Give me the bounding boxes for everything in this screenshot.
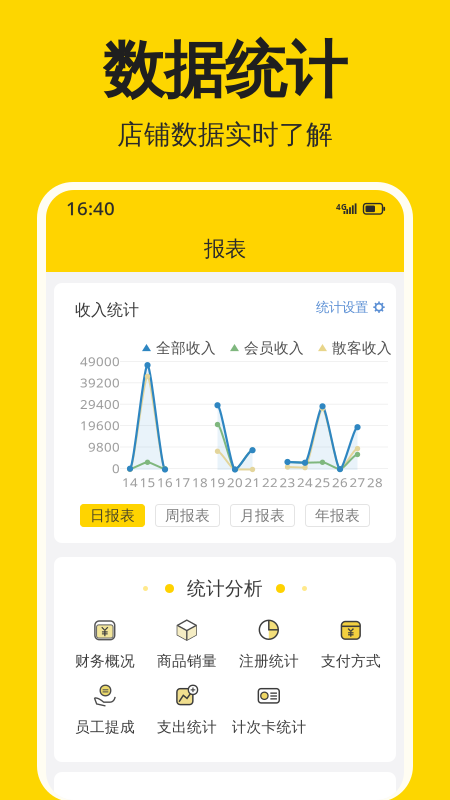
staticText: 数据统计 <box>103 33 347 108</box>
staticText: 9800 <box>88 438 120 455</box>
staticText: 日报表 <box>90 506 135 524</box>
staticText: 年报表 <box>315 506 360 524</box>
staticText: 28 <box>367 473 383 491</box>
staticText: 支付方式 <box>321 652 381 670</box>
button[interactable]: 计次卡统计 <box>228 680 310 738</box>
button[interactable]: 月报表 <box>230 504 294 526</box>
button[interactable]: 支付方式 <box>310 614 392 672</box>
staticText: 15 <box>139 473 155 491</box>
staticText: 21 <box>244 473 260 491</box>
button[interactable]: 年报表 <box>305 504 369 526</box>
staticText: 27 <box>349 473 365 491</box>
button[interactable]: 周报表 <box>155 504 219 526</box>
staticText: 财务概况 <box>75 652 135 670</box>
button[interactable]: 支出统计 <box>146 680 228 738</box>
staticText: 员工提成 <box>75 718 135 736</box>
staticText: 统计设置 <box>316 299 368 315</box>
staticText: 散客收入 <box>332 339 392 357</box>
staticText: 会员收入 <box>244 339 304 357</box>
staticText: 22 <box>262 473 278 491</box>
staticText: 月报表 <box>240 506 285 524</box>
staticText: 16 <box>157 473 173 491</box>
button[interactable]: 统计设置 <box>316 299 385 315</box>
staticText: 17 <box>174 473 190 491</box>
staticText: 全部收入 <box>156 339 216 357</box>
button[interactable]: 商品销量 <box>146 614 228 672</box>
button[interactable]: 注册统计 <box>228 614 310 672</box>
staticText: 19 <box>209 473 225 491</box>
staticText: 20 <box>227 473 243 491</box>
button[interactable]: 员工提成 <box>64 680 146 738</box>
staticText: 39200 <box>80 373 120 391</box>
staticText: 计次卡统计 <box>231 718 306 736</box>
staticText: 4G <box>336 201 347 212</box>
staticText: 49000 <box>80 352 120 370</box>
staticText: 23 <box>279 473 295 491</box>
staticText: 29400 <box>80 395 120 413</box>
staticText: 收入统计 <box>75 300 139 320</box>
staticText: 18 <box>192 473 208 491</box>
staticText: 14 <box>122 473 138 491</box>
staticText: 统计分析 <box>187 577 263 600</box>
staticText: 16:40 <box>66 196 115 220</box>
staticText: 19600 <box>80 416 120 434</box>
button[interactable]: 财务概况 <box>64 614 146 672</box>
staticText: 店铺数据实时了解 <box>117 118 333 151</box>
staticText: 商品销量 <box>157 652 217 670</box>
staticText: 24 <box>297 473 313 491</box>
button[interactable]: 日报表 <box>80 504 144 526</box>
staticText: 0 <box>112 459 120 477</box>
staticText: 周报表 <box>165 506 210 524</box>
staticText: 报表 <box>204 236 246 262</box>
staticText: 支出统计 <box>157 718 217 736</box>
staticText: 25 <box>314 473 330 491</box>
staticText: 注册统计 <box>239 652 299 670</box>
staticText: 26 <box>332 473 348 491</box>
